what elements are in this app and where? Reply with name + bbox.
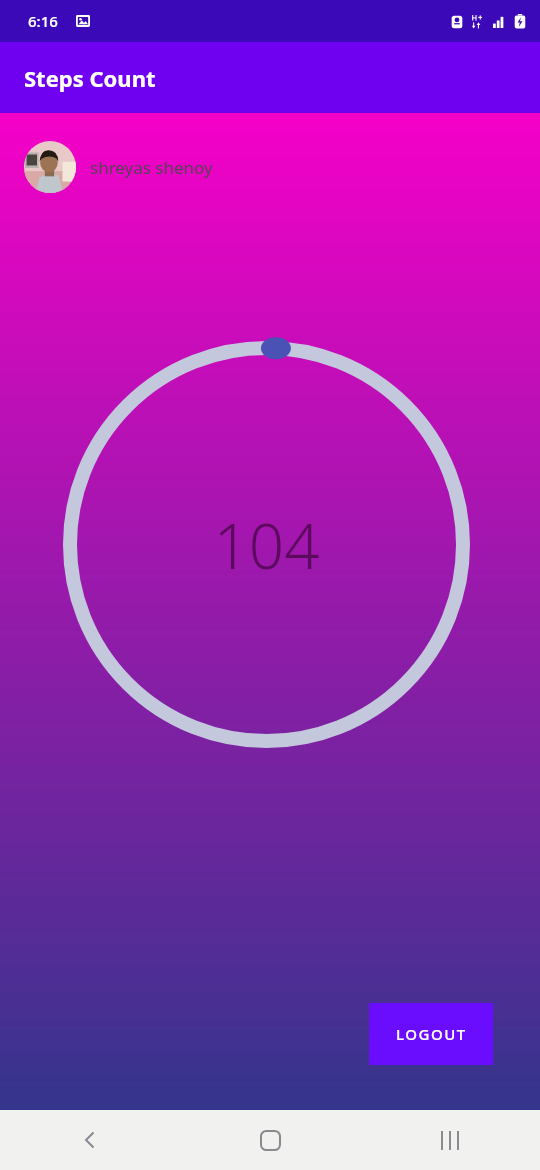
staticText: 104 [213,503,320,587]
staticText: shreyas shenoy [90,156,213,179]
staticText: LOGOUT [396,1024,467,1044]
button[interactable]: shreyas shenoy [24,141,213,193]
button[interactable]: Recent apps [360,1110,540,1170]
button[interactable]: Home [180,1110,360,1170]
button[interactable]: LOGOUT [369,1003,493,1065]
button[interactable]: Back [0,1110,180,1170]
staticText: 6:16 [28,11,58,31]
staticText: Steps Count [24,63,156,93]
